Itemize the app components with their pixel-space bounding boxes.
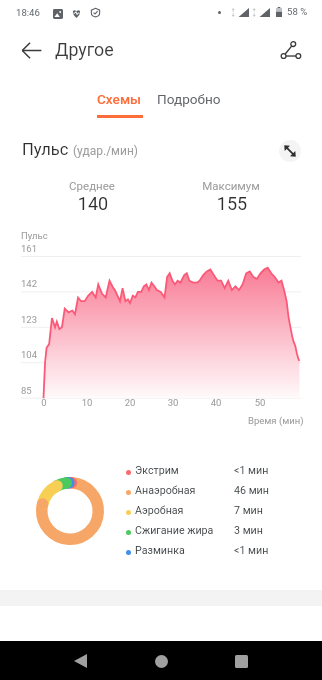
staticText: 142 (21, 278, 38, 289)
staticText: 58 % (287, 6, 308, 17)
staticText: 155 (192, 193, 272, 214)
staticText: Другое (55, 39, 114, 60)
staticText: Схемы (97, 91, 142, 107)
button[interactable]: Назад (56, 637, 104, 680)
button[interactable] (122, 542, 278, 562)
button[interactable] (122, 482, 278, 502)
staticText: 85 (21, 385, 32, 396)
staticText: (удар./мин) (73, 144, 139, 158)
staticText: Время (мин) (248, 415, 304, 426)
staticText: Экстрим (135, 464, 179, 477)
staticText: 7 мин (234, 504, 263, 517)
staticText: 3 мин (234, 524, 263, 537)
staticText: 50 (250, 397, 270, 408)
staticText: 20 (120, 397, 140, 408)
staticText: Сжигание жира (135, 524, 214, 537)
staticText: 140 (53, 193, 133, 214)
staticText: 40 (206, 397, 226, 408)
staticText: Максимум (191, 179, 271, 192)
staticText: 0 (34, 397, 54, 408)
staticText: Анаэробная (135, 484, 196, 497)
button[interactable]: Развернуть (279, 140, 301, 162)
staticText: 46 мин (234, 484, 269, 497)
button[interactable] (122, 522, 278, 542)
staticText: 10 (77, 397, 97, 408)
staticText: 104 (21, 349, 38, 360)
button[interactable]: Назад (8, 27, 55, 74)
staticText: Среднее (52, 179, 132, 192)
staticText: <1 мин (234, 544, 269, 557)
staticText: 30 (163, 397, 183, 408)
button[interactable]: Главный экран (137, 637, 185, 680)
staticText: Подробно (157, 91, 221, 107)
staticText: Пульс (21, 230, 48, 241)
staticText: <1 мин (234, 464, 269, 477)
button[interactable] (122, 502, 278, 522)
button[interactable] (151, 86, 231, 118)
button[interactable] (122, 462, 278, 482)
button[interactable]: Поделиться (267, 27, 314, 74)
button[interactable] (89, 86, 151, 118)
button[interactable]: Обзор (217, 637, 265, 680)
staticText: Пульс (22, 140, 69, 159)
staticText: 161 (21, 243, 38, 254)
staticText: Разминка (135, 544, 185, 557)
staticText: Аэробная (135, 504, 184, 517)
staticText: 123 (21, 314, 38, 325)
staticText: 18:46 (16, 7, 40, 18)
